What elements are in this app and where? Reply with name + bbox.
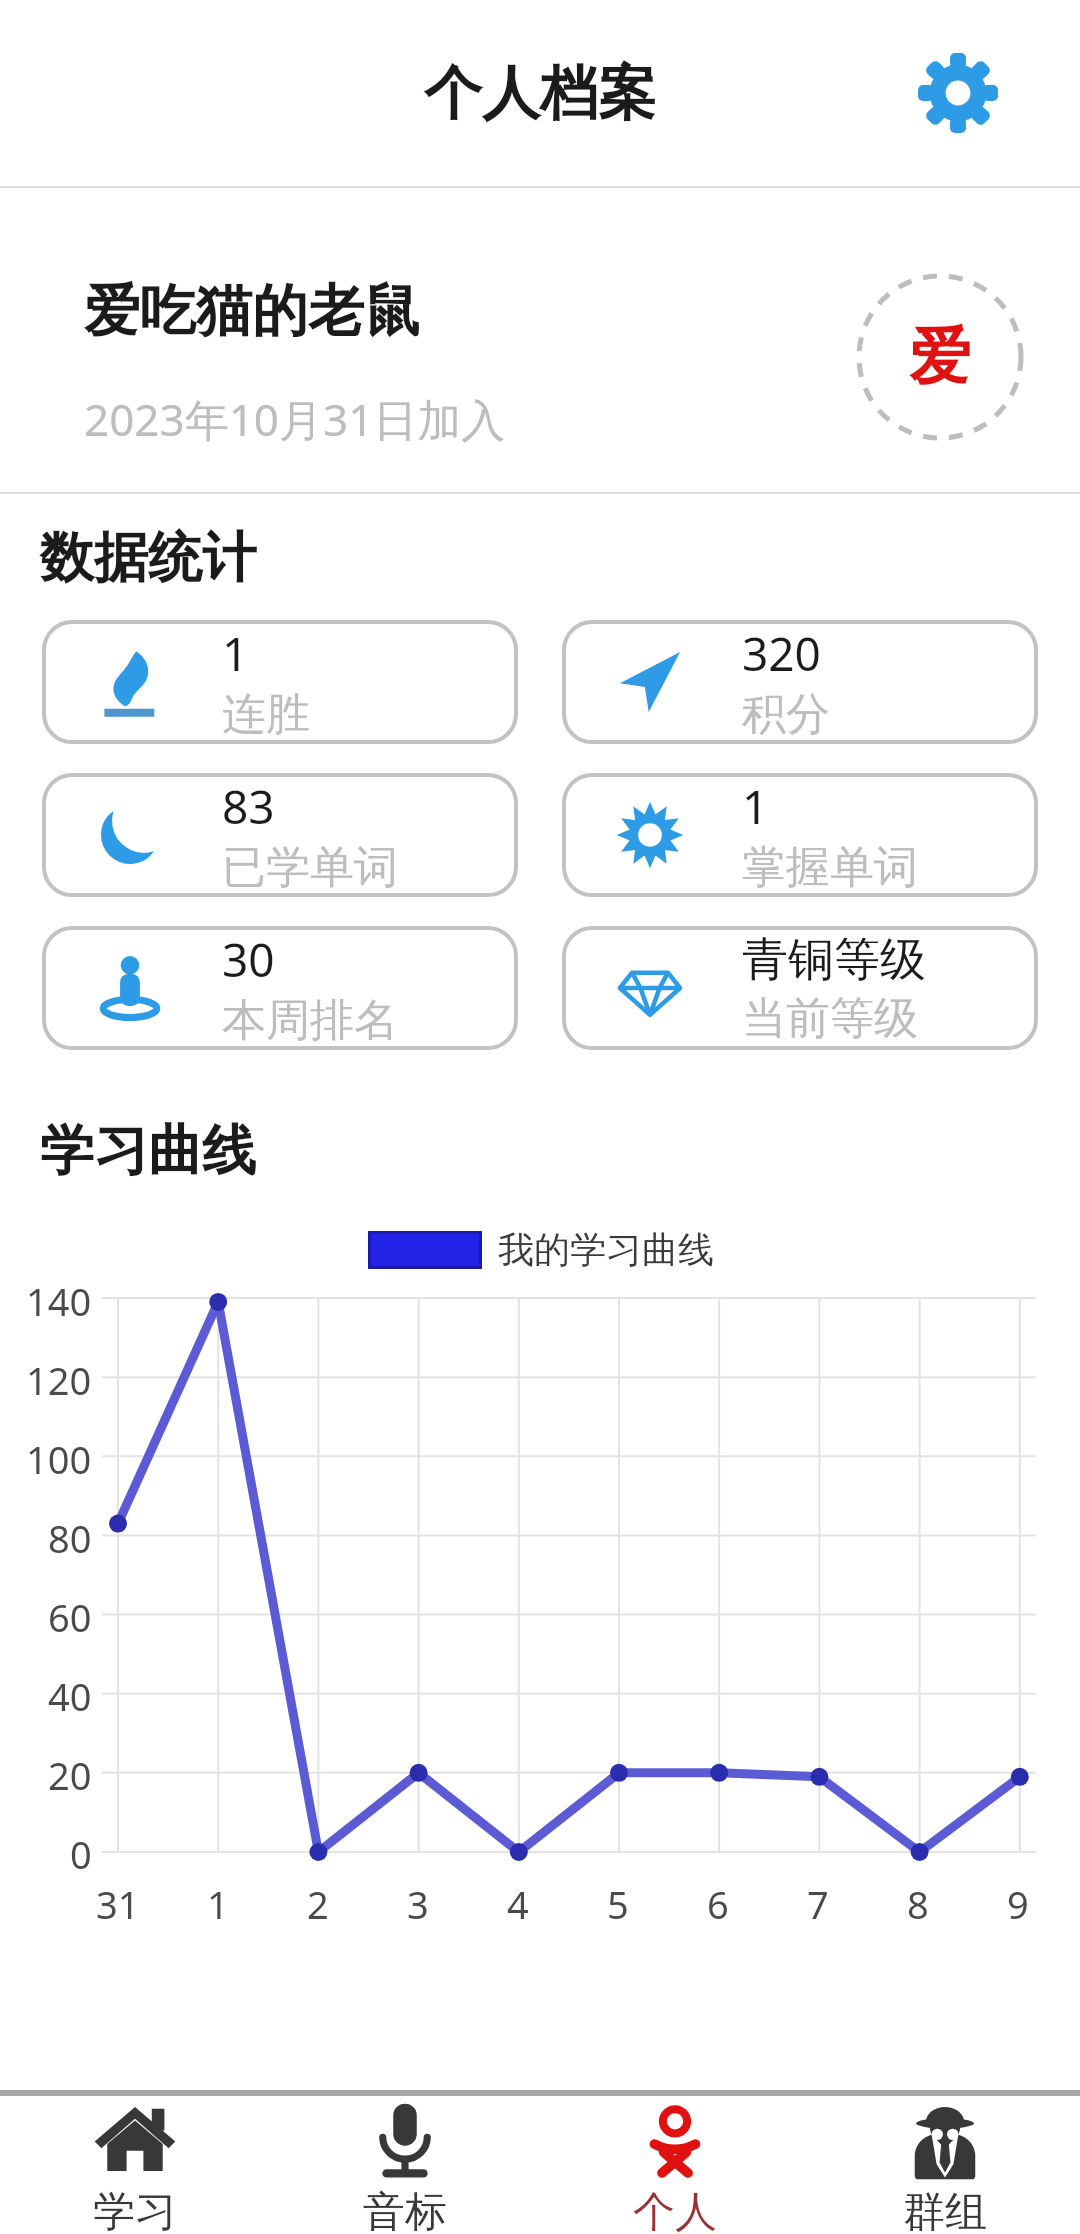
staticText: 5 bbox=[607, 1878, 629, 1930]
staticText: 积分 bbox=[742, 687, 830, 742]
staticText: 我的学习曲线 bbox=[498, 1227, 714, 1272]
staticText: 20 bbox=[48, 1749, 92, 1801]
staticText: 7 bbox=[807, 1878, 829, 1930]
button[interactable]: 30 bbox=[42, 926, 518, 1050]
staticText: 83 bbox=[222, 775, 275, 838]
staticText: 学习 bbox=[93, 2186, 177, 2234]
button[interactable]: 1 bbox=[42, 620, 518, 744]
staticText: 120 bbox=[26, 1354, 92, 1406]
staticText: 140 bbox=[26, 1275, 92, 1327]
button[interactable] bbox=[918, 53, 998, 133]
staticText: 个人档案 bbox=[424, 57, 656, 130]
staticText: 6 bbox=[707, 1878, 729, 1930]
staticText: 当前等级 bbox=[742, 991, 918, 1046]
staticText: 群组 bbox=[903, 2186, 987, 2234]
staticText: 320 bbox=[742, 622, 821, 685]
staticText: 9 bbox=[1007, 1878, 1029, 1930]
button[interactable]: 83 bbox=[42, 773, 518, 897]
staticText: 2023年10月31日加入 bbox=[84, 389, 506, 449]
staticText: 60 bbox=[48, 1591, 92, 1643]
staticText: 数据统计 bbox=[40, 524, 256, 592]
staticText: 爱吃猫的老鼠 bbox=[84, 276, 420, 347]
staticText: 个人 bbox=[633, 2186, 717, 2234]
staticText: 学习曲线 bbox=[40, 1117, 256, 1185]
staticText: 2 bbox=[307, 1878, 329, 1930]
staticText: 100 bbox=[26, 1433, 92, 1485]
staticText: 3 bbox=[407, 1878, 429, 1930]
staticText: 30 bbox=[222, 928, 275, 991]
button[interactable]: 群组 bbox=[810, 2096, 1080, 2234]
staticText: 音标 bbox=[363, 2186, 447, 2234]
button[interactable]: 青铜等级 bbox=[562, 926, 1038, 1050]
staticText: 连胜 bbox=[222, 687, 310, 742]
button[interactable]: 学习 bbox=[0, 2096, 270, 2234]
button[interactable]: 320 bbox=[562, 620, 1038, 744]
staticText: 已学单词 bbox=[222, 840, 398, 895]
staticText: 0 bbox=[70, 1828, 92, 1880]
staticText: 1 bbox=[207, 1878, 229, 1930]
staticText: 40 bbox=[48, 1670, 92, 1722]
staticText: 1 bbox=[222, 622, 249, 685]
button[interactable]: 个人 bbox=[540, 2096, 810, 2234]
button[interactable]: 1 bbox=[562, 773, 1038, 897]
staticText: 本周排名 bbox=[222, 993, 398, 1048]
button[interactable]: 音标 bbox=[270, 2096, 540, 2234]
staticText: 4 bbox=[507, 1878, 529, 1930]
staticText: 8 bbox=[907, 1878, 929, 1930]
staticText: 爱 bbox=[909, 318, 971, 396]
staticText: 青铜等级 bbox=[742, 931, 926, 989]
staticText: 80 bbox=[48, 1512, 92, 1564]
staticText: 掌握单词 bbox=[742, 840, 918, 895]
staticText: 31 bbox=[96, 1878, 140, 1930]
staticText: 1 bbox=[742, 775, 769, 838]
